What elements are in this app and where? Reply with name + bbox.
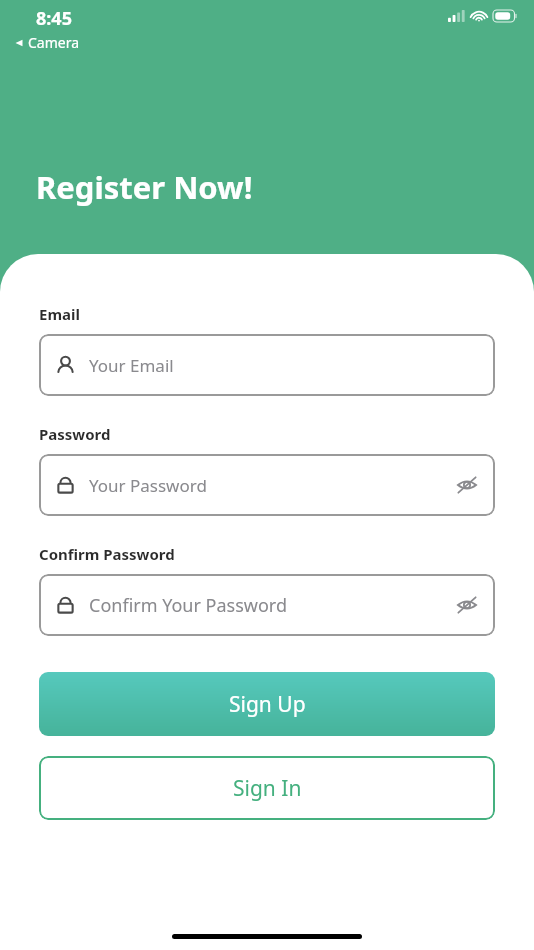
staticText: Camera [28,33,80,52]
staticText: Confirm Your Password [89,593,455,618]
staticText: Sign In [233,774,302,803]
button[interactable]: Your Password [39,454,495,516]
button[interactable]: Sign In [39,756,495,820]
staticText: Password [39,424,111,444]
button[interactable]: Your Email [39,334,495,396]
button[interactable]: Confirm Your Password [39,574,495,636]
staticText: 8:45 [36,6,72,31]
button[interactable]: Show password [455,593,479,617]
button[interactable]: Sign Up [39,672,495,736]
staticText: Register Now! [36,166,253,208]
staticText: Sign Up [229,690,306,719]
staticText: Your Email [89,354,479,377]
staticText: Your Password [89,474,455,497]
staticText: Email [39,304,80,324]
button[interactable]: Show password [455,473,479,497]
staticText: Confirm Password [39,544,175,564]
